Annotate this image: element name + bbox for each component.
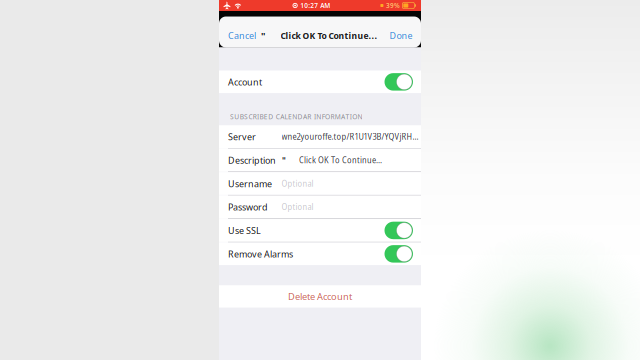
button[interactable]: Account [219, 70, 421, 93]
staticText: Click OK To Continue... [280, 29, 377, 42]
button[interactable]: Remove Alarms [219, 242, 421, 265]
staticText: Password [228, 201, 268, 213]
button[interactable]: Use SSL [219, 219, 421, 242]
button[interactable]: Delete Account [219, 285, 421, 308]
button[interactable]: Description [219, 149, 421, 171]
staticText: Delete Account [288, 290, 352, 303]
staticText: " [282, 155, 286, 165]
staticText: Server [228, 130, 256, 143]
staticText: Remove Alarms [228, 247, 293, 260]
staticText: Cancel [228, 29, 256, 42]
staticText: Click OK To Continue... [299, 155, 382, 165]
staticText: wne2youroffe.top/R1U1V3B/YQVjRH... [281, 131, 418, 142]
staticText: Optional [281, 201, 313, 212]
button[interactable]: Server [219, 125, 421, 148]
button[interactable]: Done [389, 19, 421, 45]
staticText: Use SSL [228, 224, 261, 237]
staticText: Username [228, 177, 272, 190]
button[interactable]: Cancel [219, 19, 256, 45]
staticText: Optional [281, 178, 313, 189]
staticText: Done [389, 29, 412, 42]
staticText: Account [228, 75, 262, 88]
button[interactable]: Username [219, 172, 421, 195]
staticText: SUBSCRIBED CALENDAR INFORMATION [230, 112, 362, 121]
staticText: 39% [386, 1, 400, 10]
staticText: " [261, 29, 265, 42]
staticText: Description [228, 154, 276, 166]
staticText: 10:27 AM [300, 1, 330, 10]
button[interactable]: Password [219, 196, 421, 218]
